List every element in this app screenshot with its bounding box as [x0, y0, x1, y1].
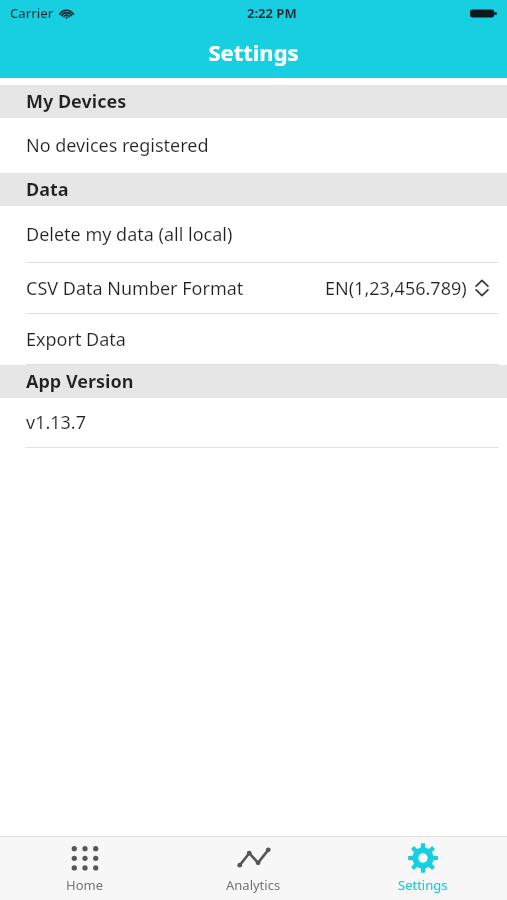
button[interactable]: Home [0, 837, 169, 900]
button[interactable]: Export Data [0, 314, 507, 364]
staticText: Analytics [226, 876, 281, 894]
staticText: 2:22 PM [247, 4, 297, 22]
other: Change number format [475, 279, 489, 297]
staticText: v1.13.7 [26, 410, 86, 435]
staticText: CSV Data Number Format [26, 276, 244, 301]
staticText: My Devices [26, 89, 127, 114]
staticText: Settings [208, 37, 299, 67]
button[interactable]: Analytics [169, 837, 338, 900]
button[interactable]: Settings [338, 837, 507, 900]
staticText: Settings [398, 876, 448, 894]
button[interactable]: CSV Data Number Format [0, 263, 507, 313]
button[interactable]: Delete my data (all local) [0, 206, 507, 262]
staticText: Carrier [10, 4, 54, 22]
staticText: Home [66, 876, 103, 894]
staticText: Delete my data (all local) [26, 222, 233, 247]
staticText: App Version [26, 369, 134, 394]
staticText: EN(1,23,456.789) [325, 276, 467, 301]
staticText: No devices registered [26, 133, 209, 158]
staticText: Data [26, 177, 69, 202]
staticText: Export Data [26, 327, 126, 352]
button[interactable]: v1.13.7 [0, 398, 507, 447]
button[interactable]: No devices registered [0, 118, 507, 173]
